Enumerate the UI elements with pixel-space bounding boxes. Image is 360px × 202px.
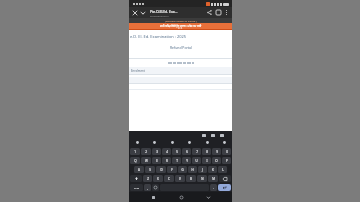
- button[interactable]: 6: [182, 148, 191, 155]
- staticText: S: [149, 168, 151, 172]
- button[interactable]: Y: [182, 157, 191, 164]
- staticText: P: [226, 159, 228, 163]
- button[interactable]: V: [175, 175, 185, 182]
- staticText: 8: [206, 150, 208, 154]
- button[interactable]: 3: [152, 148, 161, 155]
- button[interactable]: Cards: [210, 132, 216, 138]
- button[interactable]: Share: [205, 8, 214, 17]
- button[interactable]: A: [134, 166, 144, 173]
- button[interactable]: Theme: [204, 139, 210, 145]
- staticText: H: [191, 168, 194, 172]
- button[interactable]: P: [222, 157, 231, 164]
- staticText: (Formerly known as D.El.Ed.): [165, 19, 197, 22]
- button[interactable]: सभी परीक्षार्थियों हेतु सूचना : प्रवेश प…: [129, 23, 232, 29]
- button[interactable]: Voice input: [221, 139, 227, 145]
- button[interactable]: Close: [131, 9, 139, 17]
- staticText: Enrolment: [131, 69, 145, 73]
- staticText: 3: [156, 150, 158, 154]
- staticText: Pte.D.El.Ed. Exa…: [150, 9, 178, 14]
- button[interactable]: S: [145, 166, 155, 173]
- staticText: Y: [186, 159, 188, 163]
- button[interactable]: T: [172, 157, 181, 164]
- staticText: E: [156, 159, 158, 163]
- button[interactable]: 5: [172, 148, 181, 155]
- button[interactable]: D: [156, 166, 166, 173]
- button[interactable]: Shift: [130, 175, 142, 182]
- button[interactable]: N: [197, 175, 207, 182]
- staticText: L: [222, 168, 224, 172]
- staticText: D: [160, 168, 163, 172]
- button[interactable]: H: [188, 166, 197, 173]
- staticText: सभी परीक्षार्थियों हेतु सूचना : प्रवेश प…: [160, 24, 202, 28]
- button[interactable]: Tabs: [214, 8, 223, 17]
- button[interactable]: Home: [177, 193, 185, 201]
- button[interactable]: Mic: [219, 132, 225, 138]
- staticText: V: [179, 177, 181, 181]
- button[interactable]: 8: [202, 148, 211, 155]
- button[interactable]: ,: [144, 184, 151, 191]
- button[interactable]: U: [192, 157, 201, 164]
- button[interactable]: 9: [212, 148, 221, 155]
- staticText: ?123: [134, 186, 140, 189]
- staticText: Refund Portal: [170, 45, 192, 50]
- button[interactable]: J: [198, 166, 207, 173]
- button[interactable]: Enter: [218, 184, 231, 191]
- button[interactable]: Enrolment: [129, 67, 232, 74]
- button[interactable]: 0: [222, 148, 231, 155]
- button[interactable]: G: [178, 166, 187, 173]
- button[interactable]: Backspace: [219, 175, 231, 182]
- button[interactable]: R: [162, 157, 171, 164]
- staticText: 1: [134, 150, 136, 154]
- button[interactable]: More options: [223, 9, 230, 16]
- staticText: J: [202, 168, 203, 172]
- staticText: N: [201, 177, 204, 181]
- staticText: Q: [134, 159, 137, 163]
- button[interactable]: B: [186, 175, 196, 182]
- button[interactable]: Settings: [169, 139, 175, 145]
- button[interactable]: GIF: [151, 139, 157, 145]
- button[interactable]: O: [212, 157, 221, 164]
- button[interactable]: 7: [192, 148, 201, 155]
- button[interactable]: Recents: [149, 193, 157, 201]
- staticText: 9: [216, 150, 218, 154]
- button[interactable]: F: [167, 166, 177, 173]
- staticText: B: [190, 177, 192, 181]
- button[interactable]: X: [153, 175, 163, 182]
- button[interactable]: K: [208, 166, 217, 173]
- button[interactable]: Back: [204, 193, 212, 201]
- button[interactable]: W: [141, 157, 151, 164]
- staticText: I: [206, 159, 208, 163]
- button[interactable]: 2: [141, 148, 151, 155]
- button[interactable]: I: [202, 157, 211, 164]
- staticText: .: [213, 186, 214, 190]
- button[interactable]: C: [164, 175, 174, 182]
- button[interactable]: Apps: [134, 139, 140, 145]
- button[interactable]: 4: [162, 148, 171, 155]
- staticText: R: [166, 159, 168, 163]
- staticText: 7: [196, 150, 198, 154]
- button[interactable]: Emoji: [152, 184, 159, 191]
- staticText: F: [171, 168, 173, 172]
- staticText: Z: [147, 177, 149, 181]
- button[interactable]: Z: [143, 175, 152, 182]
- button[interactable]: Pte.D.El.Ed. Exa…: [150, 9, 205, 17]
- staticText: G: [181, 168, 184, 172]
- staticText: A: [138, 168, 140, 172]
- button[interactable]: Expand: [139, 9, 147, 17]
- button[interactable]: Clipboard: [201, 132, 207, 138]
- staticText: 0: [226, 150, 228, 154]
- button[interactable]: L: [218, 166, 227, 173]
- staticText: U: [195, 159, 198, 163]
- button[interactable]: Q: [130, 157, 140, 164]
- staticText: 5: [176, 150, 178, 154]
- button[interactable]: M: [208, 175, 218, 182]
- button[interactable]: E: [152, 157, 161, 164]
- button[interactable]: Stickers: [186, 139, 192, 145]
- staticText: 6: [186, 150, 188, 154]
- staticText: ,: [147, 186, 148, 190]
- button[interactable]: 1: [130, 148, 140, 155]
- button[interactable]: .: [210, 184, 217, 191]
- button[interactable]: Symbols: [130, 184, 143, 191]
